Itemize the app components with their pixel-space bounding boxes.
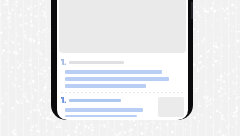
button[interactable]: Article 1. xyxy=(61,59,184,88)
button[interactable]: Article 2. xyxy=(61,97,184,117)
